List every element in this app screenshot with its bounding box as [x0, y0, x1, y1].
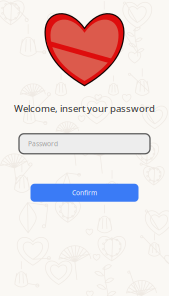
button[interactable]: Confirm [30, 184, 138, 202]
staticText: Confirm [72, 188, 97, 197]
staticText: Welcome, insert your password [14, 102, 155, 115]
staticText: Password [28, 139, 58, 148]
